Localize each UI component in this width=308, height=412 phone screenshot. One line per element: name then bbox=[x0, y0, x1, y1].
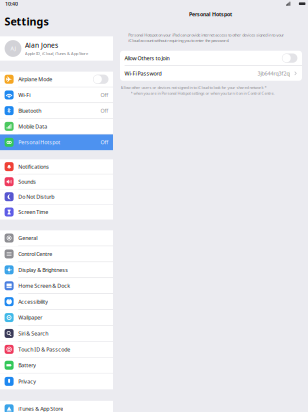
button[interactable]: AJ bbox=[0, 36, 113, 61]
button[interactable]: Accessibility bbox=[0, 294, 113, 310]
button[interactable]: Airplane Mode bbox=[0, 72, 113, 87]
staticText: Battery bbox=[18, 362, 36, 369]
staticText: Do Not Disturb bbox=[18, 193, 54, 200]
staticText: Control Centre bbox=[18, 250, 52, 257]
button[interactable]: Wallpaper bbox=[0, 310, 113, 326]
button[interactable]: Touch ID & Passcode bbox=[0, 342, 113, 358]
staticText: Apple ID, iCloud, iTunes & App Store bbox=[25, 51, 88, 56]
button[interactable]: Screen Time bbox=[0, 204, 113, 220]
staticText: 10:40 bbox=[5, 0, 18, 7]
button[interactable]: Wi-Fi Password bbox=[120, 66, 302, 81]
button[interactable]: Sounds bbox=[0, 174, 113, 189]
staticText: Mobile Data bbox=[18, 123, 47, 130]
staticText: Sounds bbox=[18, 178, 36, 185]
button[interactable]: Notifications bbox=[0, 159, 113, 174]
staticText: Screen Time bbox=[18, 208, 48, 216]
staticText: Off bbox=[100, 91, 108, 98]
staticText: Bluetooth bbox=[18, 107, 41, 114]
staticText: Off bbox=[100, 139, 108, 146]
staticText: Personal Hotspot on your iPad can provid… bbox=[128, 32, 284, 37]
button[interactable]: Battery bbox=[0, 358, 113, 373]
staticText: Airplane Mode bbox=[18, 76, 52, 83]
button[interactable]: Display & Brightness bbox=[0, 262, 113, 278]
staticText: Privacy bbox=[18, 378, 36, 385]
button[interactable]: General bbox=[0, 230, 113, 246]
button[interactable]: Do Not Disturb bbox=[0, 189, 113, 204]
staticText: Siri & Search bbox=[18, 330, 48, 337]
button[interactable]: Home Screen & Dock bbox=[0, 278, 113, 294]
staticText: Allow Others to Join bbox=[125, 55, 170, 62]
staticText: Wallpaper bbox=[18, 314, 42, 321]
button[interactable]: Privacy bbox=[0, 373, 113, 389]
staticText: Wi-Fi bbox=[18, 91, 30, 98]
staticText: 3jb644rq3f2qj bbox=[257, 70, 290, 77]
staticText: Settings bbox=[5, 14, 49, 28]
button[interactable]: Personal Hotspot bbox=[0, 134, 113, 150]
button[interactable]: Control Centre bbox=[0, 246, 113, 262]
staticText: Wi-Fi Password bbox=[125, 70, 162, 77]
staticText: Alan Jones bbox=[25, 41, 58, 50]
staticText: iCloud account without requiring you to … bbox=[128, 38, 229, 43]
button[interactable]: Bluetooth bbox=[0, 103, 113, 119]
staticText: Notifications bbox=[18, 163, 49, 170]
button[interactable]: Mobile Data bbox=[0, 119, 113, 134]
staticText: Display & Brightness bbox=[18, 266, 68, 273]
staticText: Allow other users or devices not signed … bbox=[120, 85, 266, 90]
staticText: General bbox=[18, 234, 37, 242]
staticText: * when you are in Personal Hotspot setti… bbox=[130, 90, 274, 96]
button[interactable]: iTunes & App Store bbox=[0, 401, 113, 412]
staticText: Home Screen & Dock bbox=[18, 282, 70, 289]
button[interactable]: Wi-Fi bbox=[0, 87, 113, 103]
staticText: Accessibility bbox=[18, 298, 48, 305]
staticText: iTunes & App Store bbox=[18, 405, 63, 412]
staticText: Touch ID & Passcode bbox=[18, 346, 70, 353]
staticText: AJ bbox=[10, 45, 15, 52]
button[interactable]: Siri & Search bbox=[0, 326, 113, 342]
staticText: Off bbox=[100, 107, 108, 114]
staticText: Personal Hotspot bbox=[189, 11, 232, 18]
staticText: Personal Hotspot bbox=[18, 139, 60, 146]
